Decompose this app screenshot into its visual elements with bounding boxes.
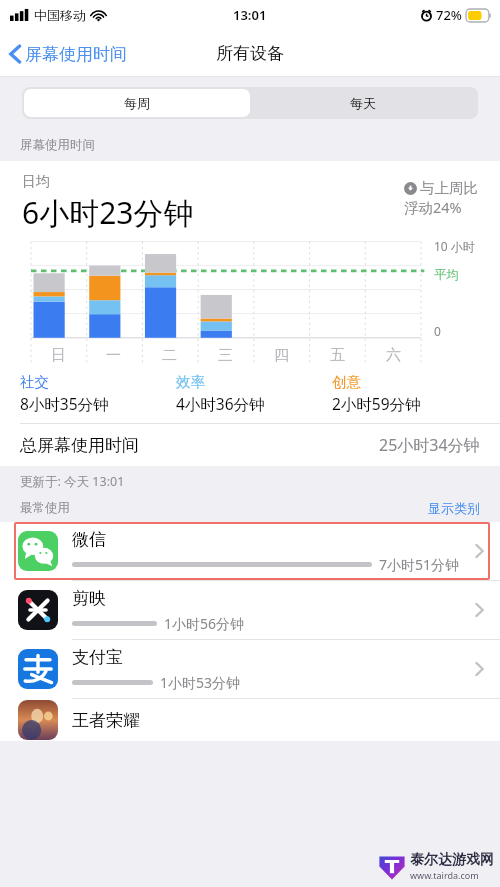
- staticText: 1小时56分钟: [164, 614, 245, 633]
- staticText: 最常使用: [20, 500, 70, 516]
- button[interactable]: 每周: [24, 89, 250, 117]
- button[interactable]: 支付宝: [0, 640, 500, 698]
- staticText: 六: [386, 346, 401, 365]
- staticText: 13:01: [233, 6, 267, 24]
- staticText: 创意: [332, 373, 361, 391]
- staticText: 屏幕使用时间: [25, 44, 127, 65]
- staticText: 微信: [72, 529, 106, 550]
- staticText: 一: [106, 346, 121, 365]
- staticText: 二: [162, 346, 177, 365]
- staticText: 社交: [20, 373, 49, 391]
- staticText: 与上周比: [420, 179, 478, 197]
- staticText: 所有设备: [216, 43, 284, 64]
- staticText: 总屏幕使用时间: [20, 435, 139, 456]
- staticText: 剪映: [72, 588, 106, 609]
- staticText: 显示类别: [428, 500, 480, 516]
- staticText: 1小时53分钟: [160, 673, 241, 692]
- staticText: 72%: [436, 6, 462, 24]
- staticText: 日: [51, 346, 66, 365]
- button[interactable]: 王者荣耀: [0, 699, 500, 741]
- staticText: 三: [218, 346, 233, 365]
- staticText: 浮动24%: [404, 197, 462, 217]
- other: 查看详情: [475, 661, 484, 677]
- other: 查看详情: [475, 602, 484, 618]
- staticText: 4小时36分钟: [176, 393, 265, 414]
- button[interactable]: 社交: [20, 373, 176, 423]
- staticText: 日均: [22, 173, 50, 191]
- button[interactable]: 屏幕使用时间: [0, 37, 135, 71]
- button[interactable]: 显示类别: [428, 500, 480, 516]
- staticText: 效率: [176, 373, 205, 391]
- staticText: 更新于: 今天 13:01: [20, 473, 125, 490]
- staticText: 8小时35分钟: [20, 393, 109, 414]
- button[interactable]: 效率: [176, 373, 332, 423]
- button[interactable]: 微信: [0, 522, 500, 580]
- button[interactable]: 剪映: [0, 581, 500, 639]
- staticText: 支付宝: [72, 647, 123, 668]
- staticText: 王者荣耀: [72, 710, 140, 731]
- staticText: 2小时59分钟: [332, 393, 421, 414]
- staticText: 平均: [434, 267, 459, 283]
- staticText: 25小时34分钟: [379, 434, 480, 456]
- staticText: 每周: [124, 95, 150, 111]
- button[interactable]: 每天: [250, 89, 476, 117]
- staticText: 四: [274, 346, 289, 365]
- staticText: 泰尔达游戏网: [410, 851, 494, 869]
- staticText: www.tairda.com: [410, 869, 479, 881]
- staticText: 10 小时: [434, 238, 475, 254]
- other: 查看详情: [475, 543, 484, 559]
- button[interactable]: 总屏幕使用时间: [0, 424, 500, 466]
- button[interactable]: 创意: [332, 373, 488, 423]
- staticText: 每天: [350, 95, 376, 111]
- staticText: 五: [330, 346, 345, 365]
- staticText: 6小时23分钟: [22, 192, 194, 233]
- staticText: 屏幕使用时间: [20, 137, 95, 153]
- staticText: 0: [434, 323, 441, 339]
- staticText: 中国移动: [34, 7, 86, 23]
- staticText: 7小时51分钟: [379, 555, 460, 574]
